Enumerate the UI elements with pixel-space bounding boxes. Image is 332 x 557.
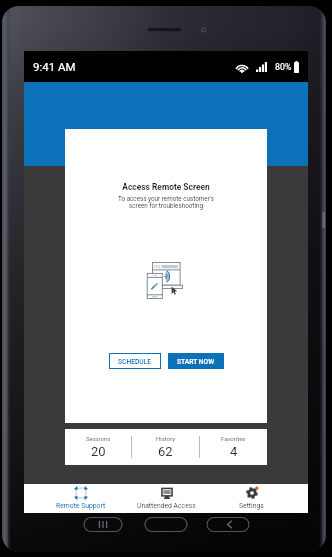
button[interactable]: Remote Support — [38, 484, 124, 513]
button[interactable]: Settings — [209, 484, 294, 513]
staticText: SCHEDULE — [118, 358, 152, 366]
button[interactable]: Unattended Access — [124, 484, 209, 513]
button[interactable]: Sessions — [65, 429, 131, 465]
staticText: Access Remote Screen — [122, 182, 210, 192]
staticText: Settings — [239, 502, 264, 510]
staticText: Favorites — [221, 435, 246, 442]
staticText: To access your remote customer's screen … — [118, 195, 214, 210]
staticText: 20 — [91, 444, 106, 459]
button[interactable]: History — [132, 429, 199, 465]
staticText: Sessions — [86, 435, 111, 442]
button[interactable]: SCHEDULE — [109, 353, 161, 369]
staticText: 80% — [275, 62, 292, 72]
staticText: START NOW — [177, 358, 215, 366]
staticText: 9:41 AM — [33, 60, 76, 73]
staticText: 62 — [158, 444, 173, 459]
staticText: Remote Support — [56, 502, 106, 510]
staticText: History — [156, 435, 176, 442]
staticText: 4 — [230, 444, 238, 459]
button[interactable]: START NOW — [168, 353, 224, 369]
staticText: Unattended Access — [137, 502, 196, 510]
button[interactable]: Favorites — [200, 429, 267, 465]
